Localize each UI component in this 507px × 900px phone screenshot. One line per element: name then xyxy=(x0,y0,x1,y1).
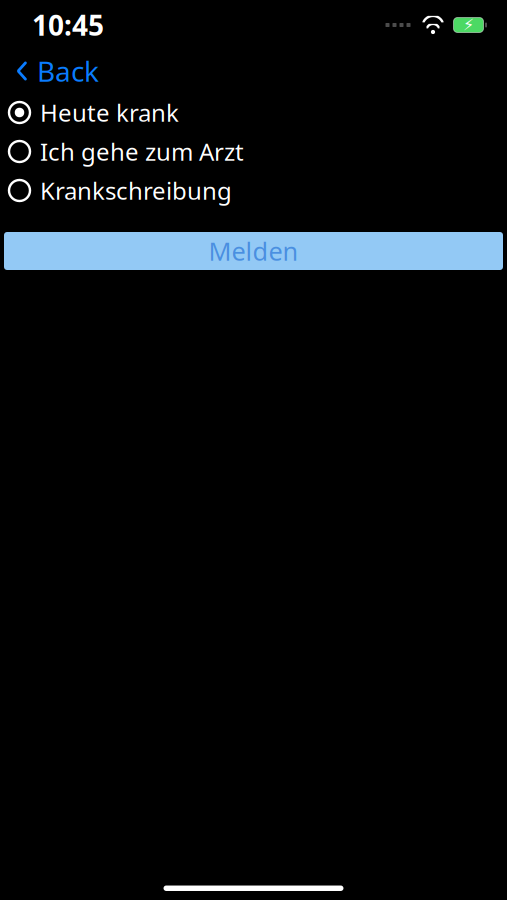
button[interactable]: Ich gehe zum Arzt xyxy=(0,132,507,171)
staticText: Back xyxy=(37,52,99,90)
staticText: Krankschreibung xyxy=(40,175,232,206)
button[interactable]: Heute krank xyxy=(0,93,507,132)
button[interactable]: Krankschreibung xyxy=(0,171,507,210)
staticText: Heute krank xyxy=(40,97,179,128)
button[interactable]: Melden xyxy=(4,232,503,270)
button[interactable]: Back xyxy=(0,44,111,98)
staticText: Melden xyxy=(208,234,298,268)
staticText: ⚡︎ xyxy=(463,16,474,34)
staticText: Ich gehe zum Arzt xyxy=(40,136,244,167)
staticText: 10:45 xyxy=(32,6,104,44)
